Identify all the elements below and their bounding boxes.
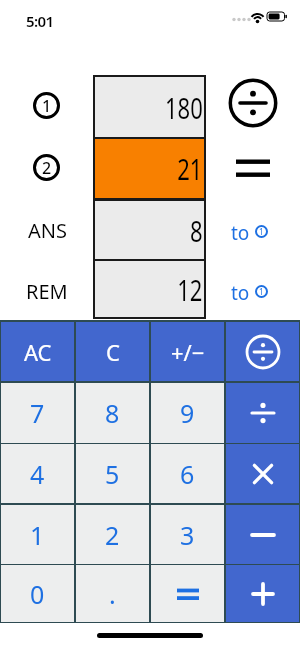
button[interactable]: AC xyxy=(1,322,74,381)
button[interactable]: C xyxy=(76,322,149,381)
staticText: 2 xyxy=(42,157,52,179)
staticText: ANS xyxy=(28,217,67,244)
staticText: C xyxy=(106,337,120,367)
staticText: 1 xyxy=(42,95,52,117)
staticText: 0 xyxy=(30,577,45,611)
button[interactable]: to xyxy=(231,280,268,302)
button[interactable] xyxy=(226,565,299,622)
button[interactable] xyxy=(226,444,299,503)
button[interactable]: 7 xyxy=(1,383,74,443)
staticText: 1 xyxy=(259,226,264,237)
button[interactable]: 4 xyxy=(1,444,74,503)
staticText: 12 xyxy=(177,270,203,309)
staticText: 4 xyxy=(30,457,45,491)
button[interactable] xyxy=(226,383,299,443)
button[interactable] xyxy=(226,322,299,381)
staticText: . xyxy=(109,577,116,611)
staticText: 21 xyxy=(177,149,203,188)
staticText: +/− xyxy=(171,337,205,367)
staticText: 7 xyxy=(30,396,45,430)
button[interactable]: . xyxy=(76,565,149,622)
staticText: 6 xyxy=(180,457,195,491)
staticText: AC xyxy=(24,337,52,367)
staticText: 5:01 xyxy=(26,11,54,31)
staticText: 8 xyxy=(190,211,203,250)
button[interactable]: to xyxy=(231,220,268,242)
staticText: 8 xyxy=(105,396,120,430)
staticText: to xyxy=(231,280,250,302)
staticText: 1 xyxy=(259,286,264,297)
staticText: to xyxy=(231,220,250,242)
staticText: 180 xyxy=(165,88,203,127)
staticText: 3 xyxy=(180,518,195,552)
staticText: 9 xyxy=(180,396,195,430)
button[interactable]: 6 xyxy=(151,444,224,503)
button[interactable] xyxy=(226,505,299,564)
button[interactable]: 2 xyxy=(76,505,149,564)
staticText: 5 xyxy=(105,457,120,491)
button[interactable]: 8 xyxy=(76,383,149,443)
button[interactable]: 3 xyxy=(151,505,224,564)
button[interactable]: +/− xyxy=(151,322,224,381)
button[interactable]: 1 xyxy=(1,505,74,564)
button[interactable] xyxy=(151,565,224,622)
button[interactable]: 0 xyxy=(1,565,74,622)
staticText: 1 xyxy=(30,518,45,552)
button[interactable]: 5 xyxy=(76,444,149,503)
button[interactable]: 9 xyxy=(151,383,224,443)
staticText: 2 xyxy=(105,518,120,552)
staticText: REM xyxy=(26,278,68,305)
